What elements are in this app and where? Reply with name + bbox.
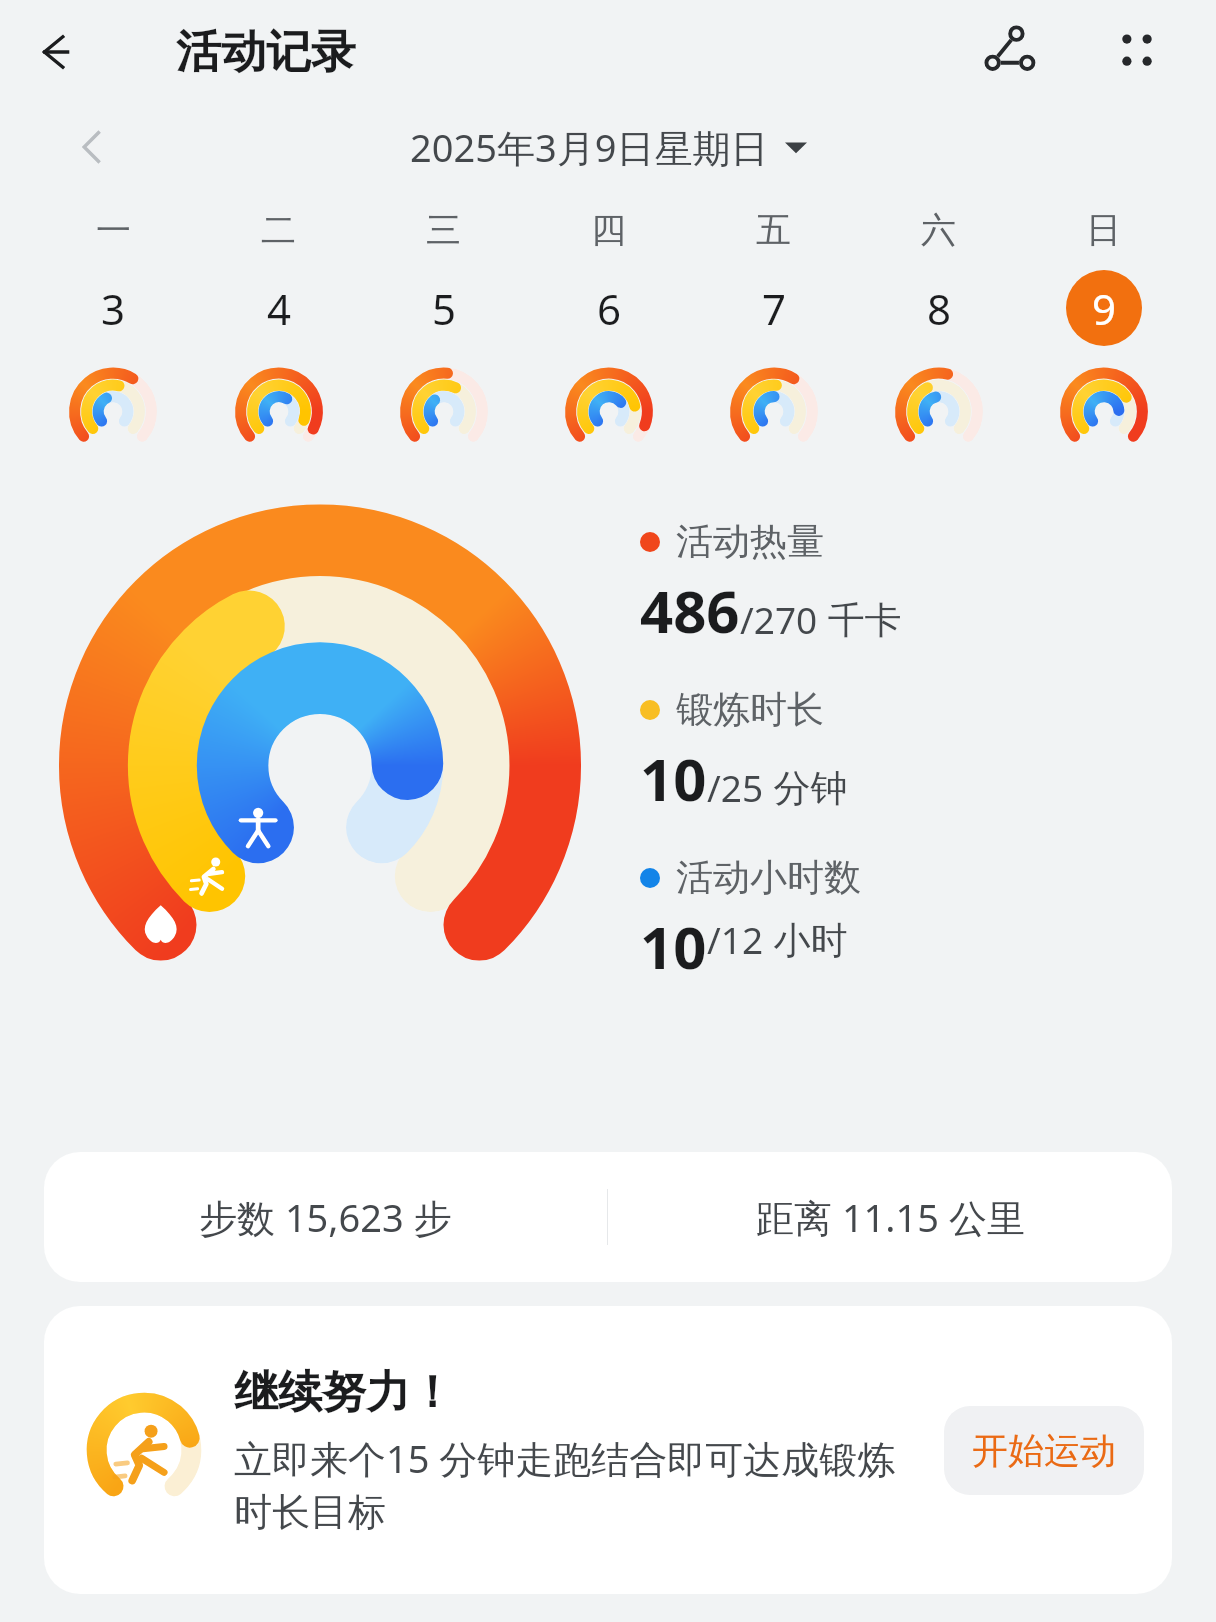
button[interactable]: Back: [22, 16, 94, 88]
button[interactable]: 日: [1021, 208, 1186, 448]
staticText: 步数 15,623 步: [199, 1191, 452, 1243]
staticText: 小时: [764, 913, 848, 964]
button[interactable]: 五: [691, 208, 856, 448]
staticText: 一: [96, 208, 131, 252]
staticText: 四: [591, 208, 626, 252]
staticText: 活动热量: [676, 518, 824, 565]
staticText: 10: [640, 907, 707, 970]
button[interactable]: 四: [526, 208, 691, 448]
staticText: 锻炼时长: [676, 686, 824, 733]
button[interactable]: 六: [856, 208, 1021, 448]
button[interactable]: 二: [196, 208, 361, 448]
button[interactable]: Share: [972, 13, 1050, 91]
button[interactable]: 三: [361, 208, 526, 448]
staticText: 10: [640, 739, 707, 818]
staticText: 5: [432, 280, 457, 337]
staticText: 活动记录: [176, 24, 356, 81]
staticText: 继续努力！: [234, 1365, 454, 1420]
staticText: 开始运动: [972, 1428, 1116, 1473]
staticText: 7: [762, 280, 787, 337]
staticText: 距离 11.15 公里: [756, 1191, 1025, 1243]
staticText: 千卡: [818, 593, 902, 644]
staticText: 6: [597, 280, 622, 337]
button[interactable]: 一: [30, 208, 196, 448]
staticText: /12: [707, 914, 764, 964]
staticText: 二: [261, 208, 296, 252]
button[interactable]: More options: [1098, 13, 1176, 91]
staticText: 3: [101, 280, 126, 337]
staticText: 六: [921, 208, 956, 252]
button[interactable]: 锻炼时长: [640, 686, 848, 818]
staticText: 9: [1092, 280, 1117, 337]
button[interactable]: 活动热量: [640, 518, 902, 650]
button[interactable]: Previous day: [58, 112, 128, 182]
staticText: 486: [640, 571, 740, 650]
staticText: 4: [267, 280, 292, 337]
staticText: 分钟: [764, 761, 848, 812]
staticText: 日: [1086, 208, 1121, 252]
staticText: /25: [707, 762, 764, 812]
button[interactable]: 步数 15,623 步: [44, 1152, 1172, 1282]
staticText: 2025年3月9日星期日: [410, 121, 769, 173]
button[interactable]: 2025年3月9日星期日: [402, 117, 815, 177]
staticText: /270: [740, 594, 818, 644]
staticText: 立即来个15 分钟走跑结合即可达成锻炼时长目标: [234, 1432, 928, 1536]
button[interactable]: 活动小时数: [640, 854, 861, 970]
staticText: 五: [756, 208, 791, 252]
button[interactable]: 开始运动: [944, 1406, 1144, 1495]
staticText: 活动小时数: [676, 854, 861, 901]
button[interactable]: 继续努力！: [44, 1306, 1172, 1594]
staticText: 三: [426, 208, 461, 252]
staticText: 8: [927, 280, 952, 337]
